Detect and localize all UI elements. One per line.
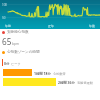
staticText: 65 (2, 36, 12, 47)
staticText: 心拍数ゾーンの時間 (7, 50, 40, 55)
staticText: 午後 (89, 24, 95, 28)
staticText: 1時間 18分 (34, 71, 51, 76)
staticText: 心拍数帯 (53, 72, 66, 76)
staticText: 正午 (48, 24, 54, 28)
staticText: 100 (2, 3, 7, 7)
staticText: 50 (2, 16, 6, 20)
staticText: 午前 (5, 24, 11, 28)
staticText: bpm (12, 42, 19, 46)
staticText: ピーク (11, 62, 21, 66)
staticText: 有酸素運動 (77, 81, 93, 85)
staticText: 0分 (4, 61, 10, 66)
staticText: 安静時心拍数 (7, 30, 29, 35)
staticText: 2時間 36分 (58, 80, 75, 85)
